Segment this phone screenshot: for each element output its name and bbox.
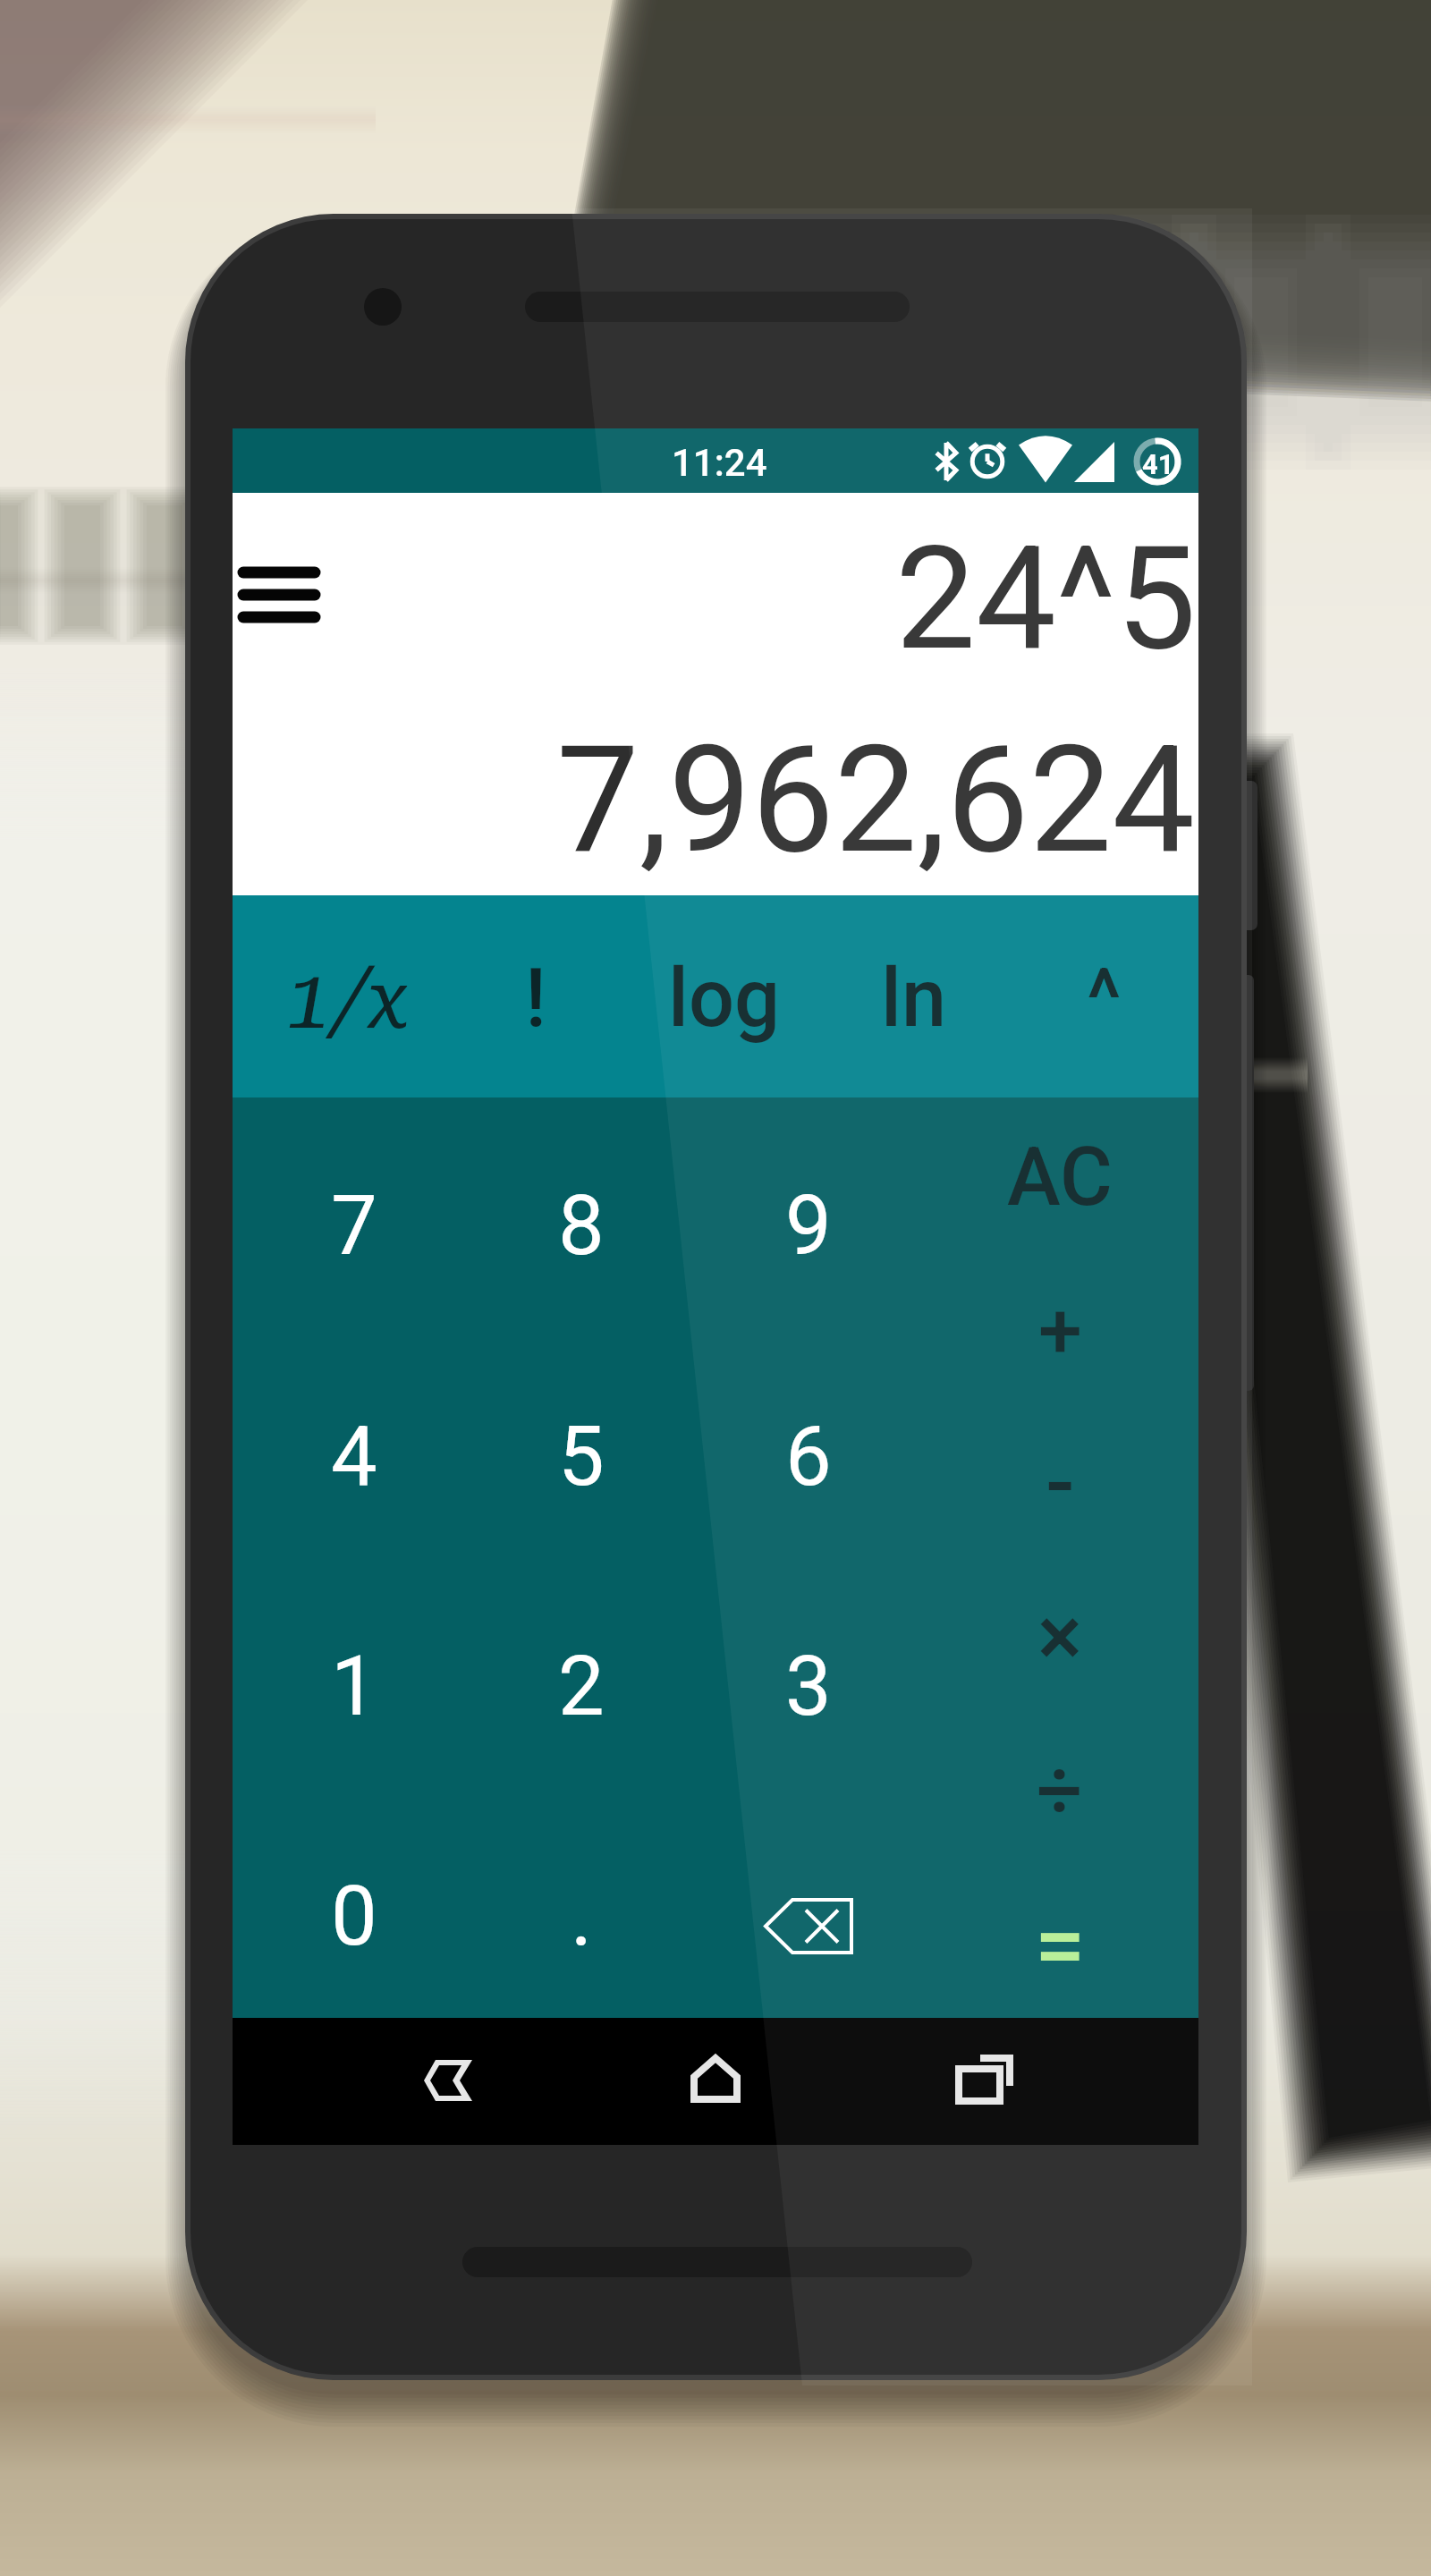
staticText: 1/x [285,952,409,1048]
button[interactable]: log [630,895,819,1097]
button[interactable]: × [926,1556,1194,1710]
button[interactable]: Menu [215,542,333,649]
staticText: 7 [331,1178,377,1275]
button[interactable]: 7,962,624 [556,708,1196,892]
button[interactable]: 5 [468,1328,695,1558]
button[interactable]: ^ [1009,895,1198,1097]
button[interactable]: Home [635,2018,796,2145]
staticText: log [668,952,781,1046]
staticText: 2 [558,1639,605,1735]
staticText: × [1037,1588,1083,1686]
button[interactable]: + [926,1250,1194,1403]
staticText: = [1035,1893,1086,1997]
staticText: ÷ [1037,1744,1083,1838]
button[interactable]: AC [926,1097,1194,1250]
button[interactable]: 4 [241,1328,468,1558]
button[interactable]: 3 [695,1558,922,1788]
staticText: 11:24 [672,441,767,485]
button[interactable]: 1/x [252,895,441,1097]
button[interactable]: 7 [241,1097,468,1328]
staticText: ln [881,952,947,1046]
staticText: AC [1007,1131,1113,1224]
staticText: 7,962,624 [556,714,1196,886]
button[interactable]: Delete [695,1788,922,2018]
button[interactable]: 24^5 [895,510,1197,689]
button[interactable]: ÷ [926,1710,1194,1864]
button[interactable]: 1 [241,1558,468,1788]
staticText: 9 [785,1178,832,1275]
button[interactable]: ! [441,895,630,1097]
button[interactable]: - [926,1403,1194,1556]
staticText: + [1038,1284,1082,1377]
staticText: 0 [331,1868,377,1965]
button[interactable]: 8 [468,1097,695,1328]
staticText: 1 [331,1639,377,1735]
button[interactable]: Recents [905,2018,1066,2145]
button[interactable]: 2 [468,1558,695,1788]
staticText: 24^5 [895,515,1197,683]
staticText: 3 [785,1639,832,1735]
button[interactable]: 0 [241,1788,468,2018]
staticText: 4 [331,1409,377,1505]
staticText: 5 [558,1409,605,1505]
button[interactable]: . [468,1788,695,2018]
button[interactable]: 6 [695,1328,922,1558]
button[interactable]: = [926,1864,1194,2018]
button[interactable]: 9 [695,1097,922,1328]
staticText: ! [525,952,546,1046]
button[interactable]: Back [367,2018,528,2145]
staticText: - [1046,1433,1075,1534]
staticText: 41 [1142,448,1174,480]
staticText: . [571,1868,593,1965]
button[interactable]: ln [819,895,1009,1097]
staticText: ^ [1087,952,1122,1046]
staticText: 6 [785,1409,832,1505]
staticText: 8 [558,1178,605,1275]
